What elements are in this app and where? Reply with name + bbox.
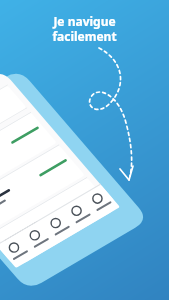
staticText: Je navigue facilement — [52, 13, 117, 44]
